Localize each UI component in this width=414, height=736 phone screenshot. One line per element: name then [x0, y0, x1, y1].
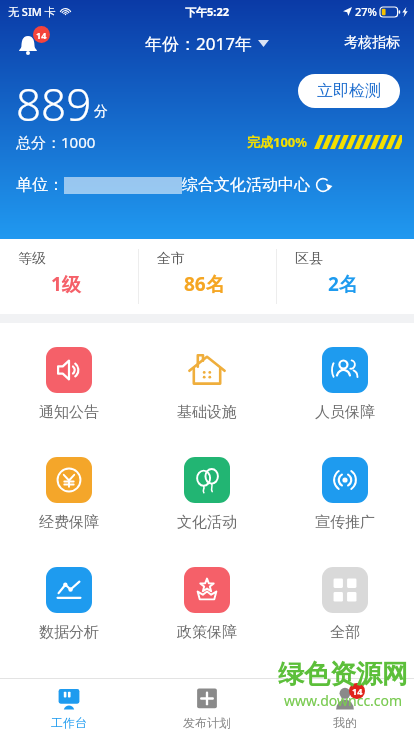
button[interactable]: 文化活动 — [138, 447, 276, 557]
button[interactable]: 立即检测 — [298, 74, 400, 108]
staticText: 绿色资源网 — [278, 658, 408, 691]
staticText: 基础设施 — [177, 403, 237, 422]
staticText: 立即检测 — [317, 81, 381, 101]
button[interactable]: 发布计划 — [138, 679, 276, 736]
button[interactable]: 数据分析 — [0, 557, 138, 667]
staticText: 总分：1000 — [16, 132, 96, 152]
button[interactable]: 全市 — [139, 239, 276, 314]
staticText: 14 — [352, 685, 363, 697]
button[interactable]: 等级 — [0, 239, 138, 314]
staticText: 通知公告 — [39, 403, 99, 422]
staticText: 等级 — [18, 250, 46, 268]
staticText: 工作台 — [51, 715, 87, 730]
button[interactable]: 政策保障 — [138, 557, 276, 667]
staticText: 文化活动 — [177, 513, 237, 532]
staticText: 经费保障 — [39, 513, 99, 532]
staticText: 政策保障 — [177, 623, 237, 642]
staticText: 27% — [355, 4, 377, 19]
button[interactable]: 通知公告 — [0, 337, 138, 447]
button[interactable]: 14 — [276, 679, 414, 736]
button[interactable]: 基础设施 — [138, 337, 276, 447]
staticText: 14 — [36, 29, 47, 41]
staticText: 全部 — [330, 623, 360, 642]
button[interactable]: 年份：2017年 — [145, 32, 269, 55]
button[interactable]: 通知 — [8, 22, 52, 64]
button[interactable]: 宣传推广 — [276, 447, 414, 557]
staticText: 区县 — [295, 250, 323, 268]
staticText: 86名 — [184, 271, 225, 297]
staticText: 发布计划 — [183, 715, 231, 730]
staticText: 889 — [16, 74, 92, 126]
staticText: 数据分析 — [39, 623, 99, 642]
staticText: 考核指标 — [344, 34, 400, 52]
staticText: 人员保障 — [315, 403, 375, 422]
staticText: 分 — [94, 103, 108, 121]
button[interactable]: 考核指标 — [330, 26, 414, 60]
staticText: 单位： — [16, 175, 64, 195]
staticText: 完成100% — [247, 133, 308, 151]
staticText: 宣传推广 — [315, 513, 375, 532]
button[interactable]: 经费保障 — [0, 447, 138, 557]
staticText: 下午5:22 — [185, 4, 229, 19]
staticText: 综合文化活动中心 — [182, 175, 310, 195]
staticText: 年份：2017年 — [145, 32, 252, 55]
staticText: 我的 — [333, 715, 357, 730]
staticText: 无 SIM 卡 — [8, 4, 56, 19]
button[interactable]: 工作台 — [0, 679, 138, 736]
button[interactable]: 全部 — [276, 557, 414, 667]
staticText: 1级 — [51, 271, 81, 297]
button[interactable]: 人员保障 — [276, 337, 414, 447]
staticText: 全市 — [157, 250, 185, 268]
button[interactable]: 区县 — [277, 239, 414, 314]
staticText: 2名 — [328, 271, 358, 297]
staticText: www.downcc.com — [284, 691, 403, 710]
button[interactable]: 切换单位 — [312, 174, 334, 196]
